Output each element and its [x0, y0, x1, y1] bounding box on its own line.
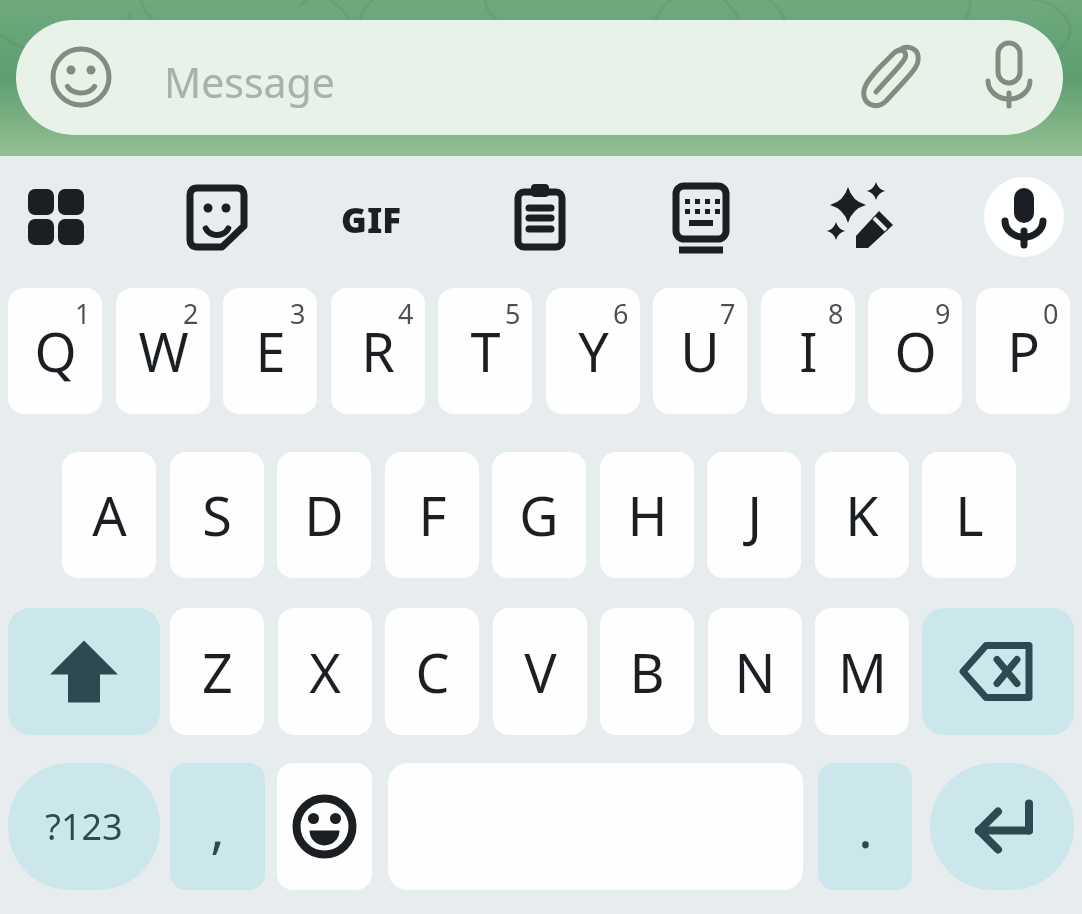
- button[interactable]: Message: [16, 20, 1063, 135]
- staticText: J: [747, 478, 762, 552]
- button[interactable]: W: [116, 288, 210, 414]
- staticText: ,: [210, 790, 225, 864]
- button[interactable]: P: [976, 288, 1070, 414]
- staticText: 6: [613, 295, 629, 332]
- staticText: C: [415, 635, 450, 709]
- staticText: .: [858, 790, 873, 864]
- button[interactable]: Q: [8, 288, 102, 414]
- staticText: I: [799, 314, 818, 388]
- button[interactable]: T: [438, 288, 532, 414]
- button[interactable]: Apps: [14, 175, 98, 259]
- button[interactable]: V: [493, 608, 587, 735]
- staticText: F: [418, 478, 447, 552]
- button[interactable]: GIF: [337, 175, 421, 259]
- staticText: B: [629, 635, 665, 709]
- button[interactable]: Shift: [8, 608, 160, 735]
- button[interactable]: F: [385, 452, 479, 578]
- button[interactable]: Stickers: [175, 175, 259, 259]
- button[interactable]: R: [331, 288, 425, 414]
- staticText: D: [304, 478, 344, 552]
- button[interactable]: Clipboard: [498, 175, 582, 259]
- staticText: 0: [1043, 295, 1059, 332]
- staticText: U: [680, 314, 720, 388]
- staticText: Q: [34, 314, 77, 388]
- button[interactable]: A: [62, 452, 156, 578]
- button[interactable]: ,: [170, 763, 265, 890]
- button[interactable]: .: [818, 763, 912, 890]
- staticText: Z: [202, 635, 233, 709]
- staticText: S: [202, 478, 232, 552]
- staticText: T: [470, 314, 501, 388]
- staticText: 2: [183, 295, 199, 332]
- staticText: 5: [505, 295, 521, 332]
- staticText: X: [309, 635, 341, 709]
- staticText: V: [524, 635, 557, 709]
- button[interactable]: B: [600, 608, 694, 735]
- button[interactable]: Emoji: [277, 763, 372, 890]
- staticText: A: [92, 478, 127, 552]
- button[interactable]: M: [815, 608, 909, 735]
- staticText: 8: [828, 295, 844, 332]
- staticText: O: [894, 314, 937, 388]
- button[interactable]: N: [708, 608, 802, 735]
- staticText: 3: [290, 295, 306, 332]
- button[interactable]: L: [922, 452, 1016, 578]
- staticText: W: [138, 314, 189, 388]
- button[interactable]: Backspace: [922, 608, 1074, 735]
- button[interactable]: J: [707, 452, 801, 578]
- staticText: 1: [75, 295, 91, 332]
- button[interactable]: K: [815, 452, 909, 578]
- staticText: R: [361, 314, 395, 388]
- button[interactable]: U: [653, 288, 747, 414]
- staticText: G: [519, 478, 559, 552]
- button[interactable]: Keyboard settings: [659, 175, 743, 259]
- button[interactable]: AI writing: [820, 175, 904, 259]
- staticText: 9: [935, 295, 951, 332]
- staticText: P: [1007, 314, 1040, 388]
- staticText: 4: [398, 295, 414, 332]
- button[interactable]: C: [385, 608, 479, 735]
- staticText: H: [627, 478, 668, 552]
- staticText: M: [838, 635, 887, 709]
- button[interactable]: I: [761, 288, 855, 414]
- staticText: 7: [720, 295, 736, 332]
- staticText: Y: [578, 314, 609, 388]
- button[interactable]: Voice input: [984, 177, 1064, 257]
- button[interactable]: O: [868, 288, 962, 414]
- staticText: GIF: [341, 196, 402, 244]
- staticText: K: [845, 478, 879, 552]
- button[interactable]: G: [492, 452, 586, 578]
- staticText: Message: [164, 54, 335, 110]
- button[interactable]: E: [223, 288, 317, 414]
- button[interactable]: S: [170, 452, 264, 578]
- button[interactable]: X: [278, 608, 372, 735]
- staticText: N: [734, 635, 776, 709]
- staticText: E: [255, 314, 286, 388]
- button[interactable]: Z: [170, 608, 264, 735]
- staticText: ?123: [45, 802, 123, 851]
- button[interactable]: Y: [546, 288, 640, 414]
- button[interactable]: D: [277, 452, 371, 578]
- button[interactable]: H: [600, 452, 694, 578]
- button[interactable]: ?123: [8, 763, 160, 890]
- button[interactable]: Enter: [930, 763, 1074, 890]
- staticText: L: [955, 478, 984, 552]
